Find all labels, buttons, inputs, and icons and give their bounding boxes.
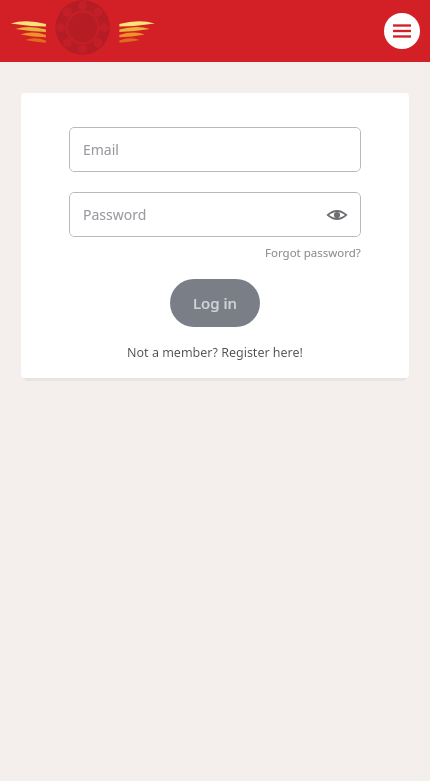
button[interactable]: Freedom Casino home — [16, 2, 152, 60]
button[interactable]: Email — [69, 127, 361, 172]
button[interactable]: Password — [69, 192, 361, 237]
staticText: Log in — [193, 293, 237, 313]
staticText: Password — [83, 205, 147, 224]
staticText: Email — [83, 140, 119, 159]
button[interactable]: Menu — [384, 13, 420, 49]
button[interactable]: Forgot password? — [265, 245, 361, 261]
button[interactable]: Log in — [170, 279, 260, 327]
button[interactable]: Not a member? Register here! — [127, 344, 303, 361]
button[interactable]: Show password — [323, 201, 351, 229]
